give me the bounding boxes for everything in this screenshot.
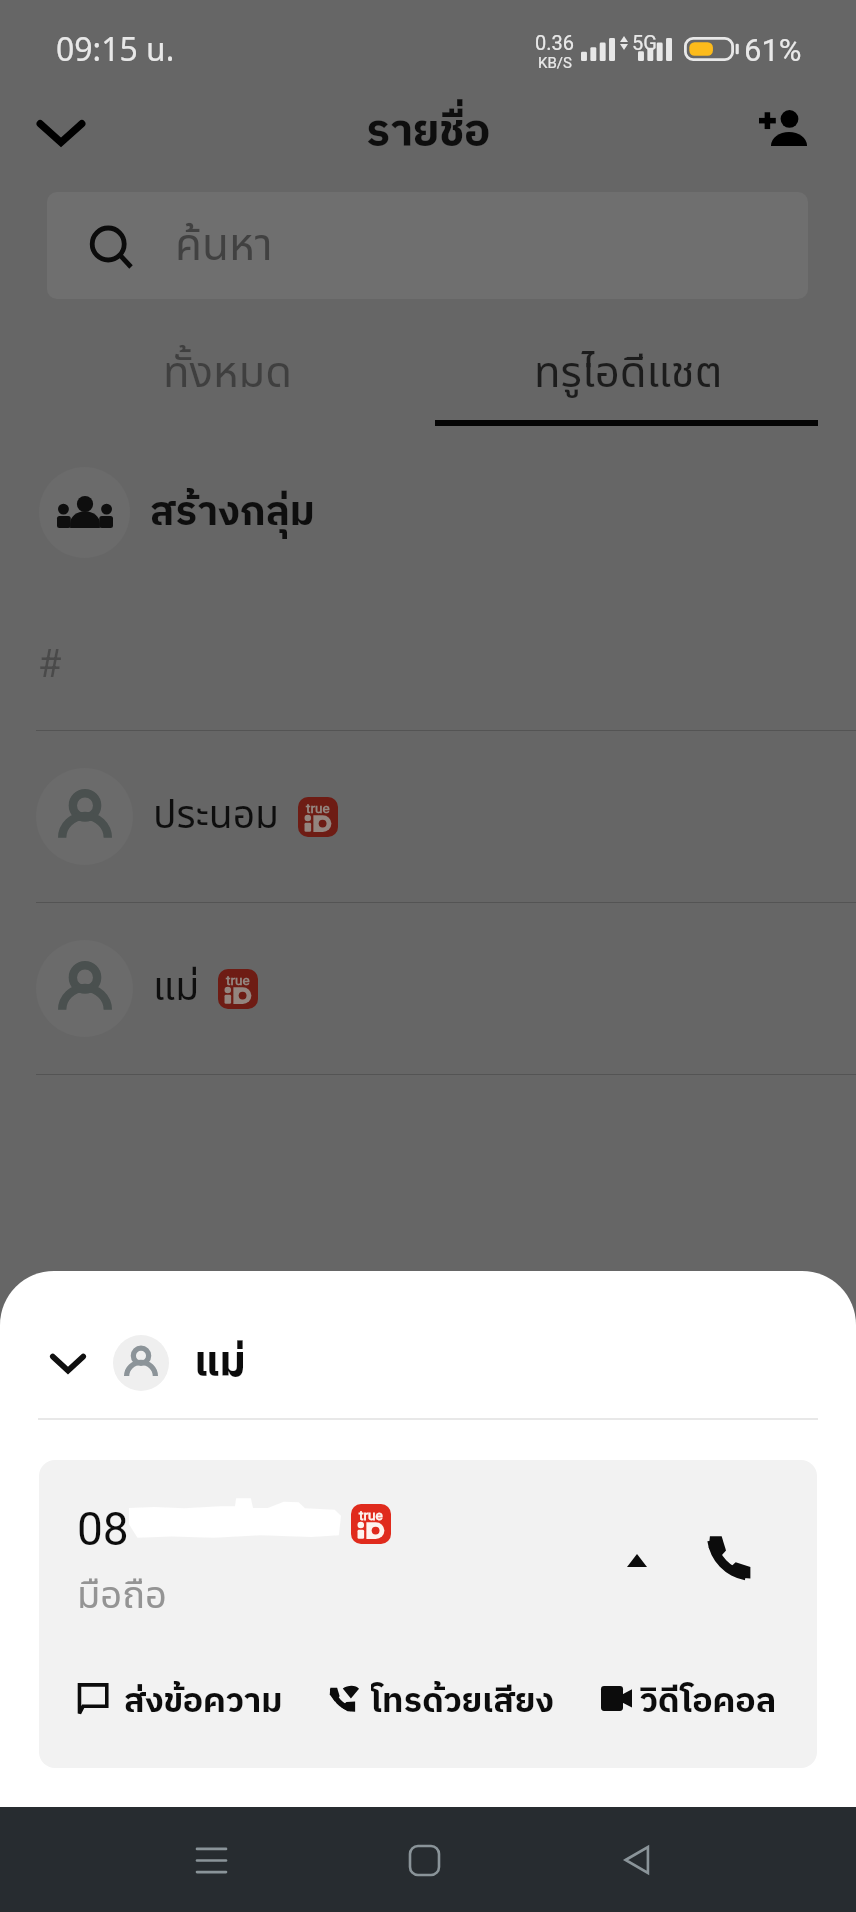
- button[interactable]: วิดีโอคอล: [601, 1674, 777, 1722]
- staticText: แม่: [153, 959, 200, 1018]
- staticText: 09:15 น.: [56, 27, 175, 75]
- button[interactable]: Back: [592, 1815, 682, 1905]
- button[interactable]: ส่งข้อความ: [77, 1674, 283, 1722]
- staticText: ทรูไอดีแชต: [534, 341, 723, 407]
- staticText: true: [306, 800, 330, 816]
- staticText: ทั้งหมด: [163, 341, 293, 407]
- button[interactable]: โทรด้วยเสียง: [329, 1674, 555, 1722]
- staticText: สร้างกลุ่ม: [150, 480, 315, 546]
- staticText: ประนอม: [153, 787, 280, 846]
- button[interactable]: Add contact: [739, 88, 827, 176]
- staticText: ค้นหา: [175, 213, 273, 279]
- button[interactable]: Home: [379, 1815, 469, 1905]
- staticText: KB/S: [538, 54, 572, 72]
- staticText: 5G: [632, 31, 657, 54]
- staticText: โทรด้วยเสียง: [371, 1674, 555, 1722]
- button[interactable]: ทรูไอดีแชต: [428, 313, 828, 434]
- staticText: วิดีโอคอล: [640, 1674, 777, 1722]
- staticText: มือถือ: [77, 1568, 167, 1625]
- button[interactable]: ค้นหา: [47, 192, 808, 299]
- button[interactable]: Collapse: [36, 1331, 100, 1395]
- staticText: 0.36: [535, 31, 574, 54]
- button[interactable]: สร้างกลุ่ม: [0, 467, 856, 558]
- staticText: ส่งข้อความ: [124, 1674, 283, 1722]
- staticText: แม่: [194, 1329, 246, 1397]
- button[interactable]: Recents: [166, 1815, 256, 1905]
- staticText: true: [359, 1507, 383, 1523]
- staticText: 08: [77, 1502, 129, 1546]
- staticText: รายชื่อ: [366, 96, 491, 169]
- button[interactable]: ทั้งหมด: [28, 313, 428, 434]
- staticText: 61%: [744, 32, 802, 68]
- staticText: true: [226, 972, 250, 988]
- button[interactable]: ประนอม: [0, 731, 856, 902]
- button[interactable]: แม่: [0, 903, 856, 1074]
- button[interactable]: Collapse: [17, 88, 105, 176]
- staticText: #: [38, 642, 62, 687]
- button[interactable]: Expand: [608, 1531, 666, 1589]
- button[interactable]: Call: [694, 1522, 764, 1592]
